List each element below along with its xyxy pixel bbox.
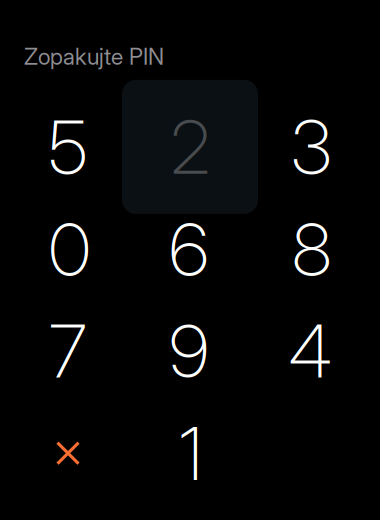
staticText: 2 [170,103,210,191]
button[interactable]: 7 [7,300,129,402]
button[interactable]: 5 [7,96,129,198]
staticText: Zopakujte PIN [24,43,164,70]
staticText: 1 [179,409,203,497]
staticText: 0 [48,205,90,293]
staticText: 5 [48,102,87,191]
staticText: 4 [288,306,331,395]
staticText: 3 [291,102,332,191]
staticText: 6 [169,205,209,293]
button[interactable]: 6 [128,198,250,300]
staticText: 8 [292,205,332,293]
button[interactable]: 3 [250,96,372,198]
button[interactable]: 4 [249,300,371,402]
staticText: 7 [49,306,87,395]
button[interactable]: 1 [130,402,252,504]
button[interactable]: Zrušiť [7,402,129,504]
button[interactable]: 0 [8,198,130,300]
staticText: 9 [169,306,209,395]
button[interactable]: 8 [251,198,373,300]
button[interactable]: 2 [122,78,258,212]
button[interactable]: 9 [128,300,250,402]
